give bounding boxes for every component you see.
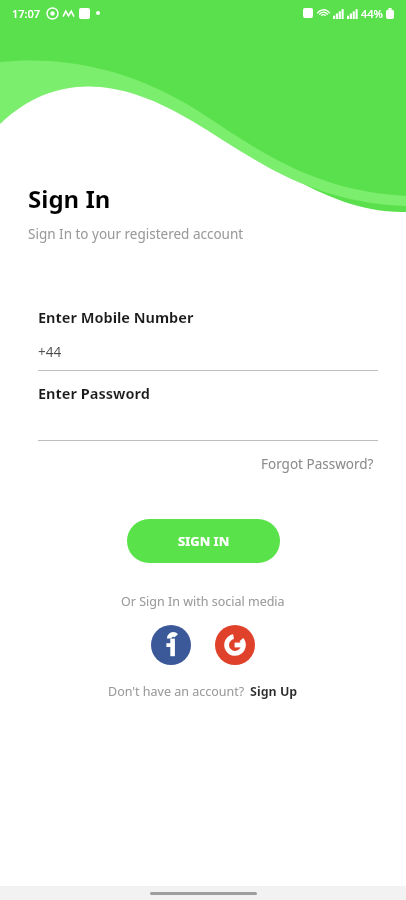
button[interactable]: SIGN IN [127, 519, 280, 563]
button[interactable]: Sign in with Facebook [151, 625, 191, 665]
staticText: Don't have an account? [108, 683, 245, 700]
staticText: Sign Up [250, 683, 298, 700]
staticText: +44 [38, 343, 62, 361]
button[interactable]: Forgot Password? [257, 451, 378, 477]
button[interactable]: +44 [38, 343, 378, 371]
staticText: Enter Password [38, 383, 150, 403]
staticText: Sign In [28, 182, 111, 215]
staticText: 17:07 [12, 6, 41, 21]
button[interactable]: Sign in with Google [215, 625, 255, 665]
button[interactable] [38, 403, 378, 441]
button[interactable]: Sign Up [250, 683, 298, 700]
staticText: 44% [361, 6, 383, 21]
staticText: Or Sign In with social media [121, 593, 285, 610]
staticText: Forgot Password? [261, 455, 374, 473]
staticText: Enter Mobile Number [38, 307, 194, 327]
staticText: Sign In to your registered account [28, 225, 244, 243]
staticText: SIGN IN [178, 532, 230, 550]
